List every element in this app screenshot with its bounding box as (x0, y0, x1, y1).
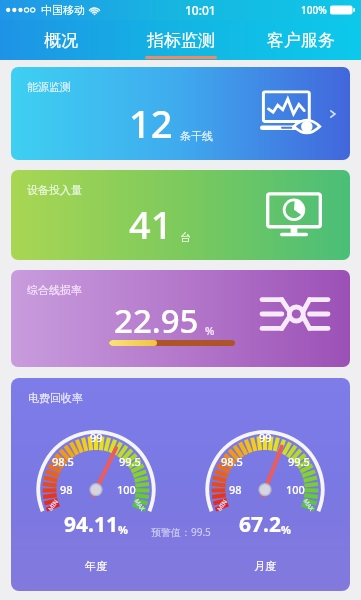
staticText: % (281, 522, 291, 537)
staticText: 指标监测 (147, 30, 215, 51)
staticText: 年度 (85, 559, 107, 573)
staticText: 中国移动 (41, 3, 85, 17)
staticText: 99.5 (288, 454, 310, 469)
staticText: 12 (129, 97, 173, 149)
button[interactable]: 综合线损率 (11, 270, 350, 367)
staticText: 100 (117, 482, 136, 497)
staticText: 94.11 (64, 510, 118, 539)
staticText: 100 (286, 482, 305, 497)
button[interactable]: 电费回收率 (11, 378, 350, 591)
button[interactable]: 能源监测 (11, 67, 350, 160)
staticText: 月度 (254, 559, 276, 573)
other: Energy monitoring (260, 90, 322, 137)
staticText: % (205, 323, 215, 338)
staticText: 设备投入量 (27, 183, 82, 197)
button[interactable]: 概况 (0, 20, 121, 60)
staticText: MAX (132, 497, 146, 513)
staticText: % (118, 522, 128, 537)
staticText: 99 (259, 430, 272, 445)
staticText: MAX (301, 497, 315, 513)
staticText: 67.2 (239, 510, 281, 539)
staticText: 98.5 (52, 454, 74, 469)
staticText: 10:01 (185, 2, 216, 18)
staticText: 能源监测 (27, 80, 71, 94)
staticText: 综合线损率 (27, 283, 82, 297)
staticText: 预警值：99.5 (151, 525, 211, 539)
staticText: 条干线 (180, 129, 213, 143)
staticText: 100% (301, 3, 327, 17)
staticText: 99 (90, 430, 103, 445)
staticText: MIN (46, 497, 60, 513)
staticText: 概况 (44, 30, 78, 51)
staticText: MIN (215, 497, 229, 513)
other: Devices in service (266, 192, 322, 239)
staticText: 41 (129, 198, 173, 250)
staticText: 22.95 (114, 298, 199, 343)
staticText: 台 (180, 230, 191, 244)
other: Line loss rate (262, 294, 328, 334)
button[interactable]: 客户服务 (241, 20, 361, 60)
button[interactable]: 指标监测 (121, 20, 241, 60)
staticText: 98 (60, 482, 73, 497)
staticText: 98 (229, 482, 242, 497)
button[interactable]: 设备投入量 (11, 170, 350, 260)
staticText: 客户服务 (267, 30, 335, 51)
staticText: 电费回收率 (28, 391, 83, 405)
staticText: 98.5 (221, 454, 243, 469)
staticText: 99.5 (119, 454, 141, 469)
